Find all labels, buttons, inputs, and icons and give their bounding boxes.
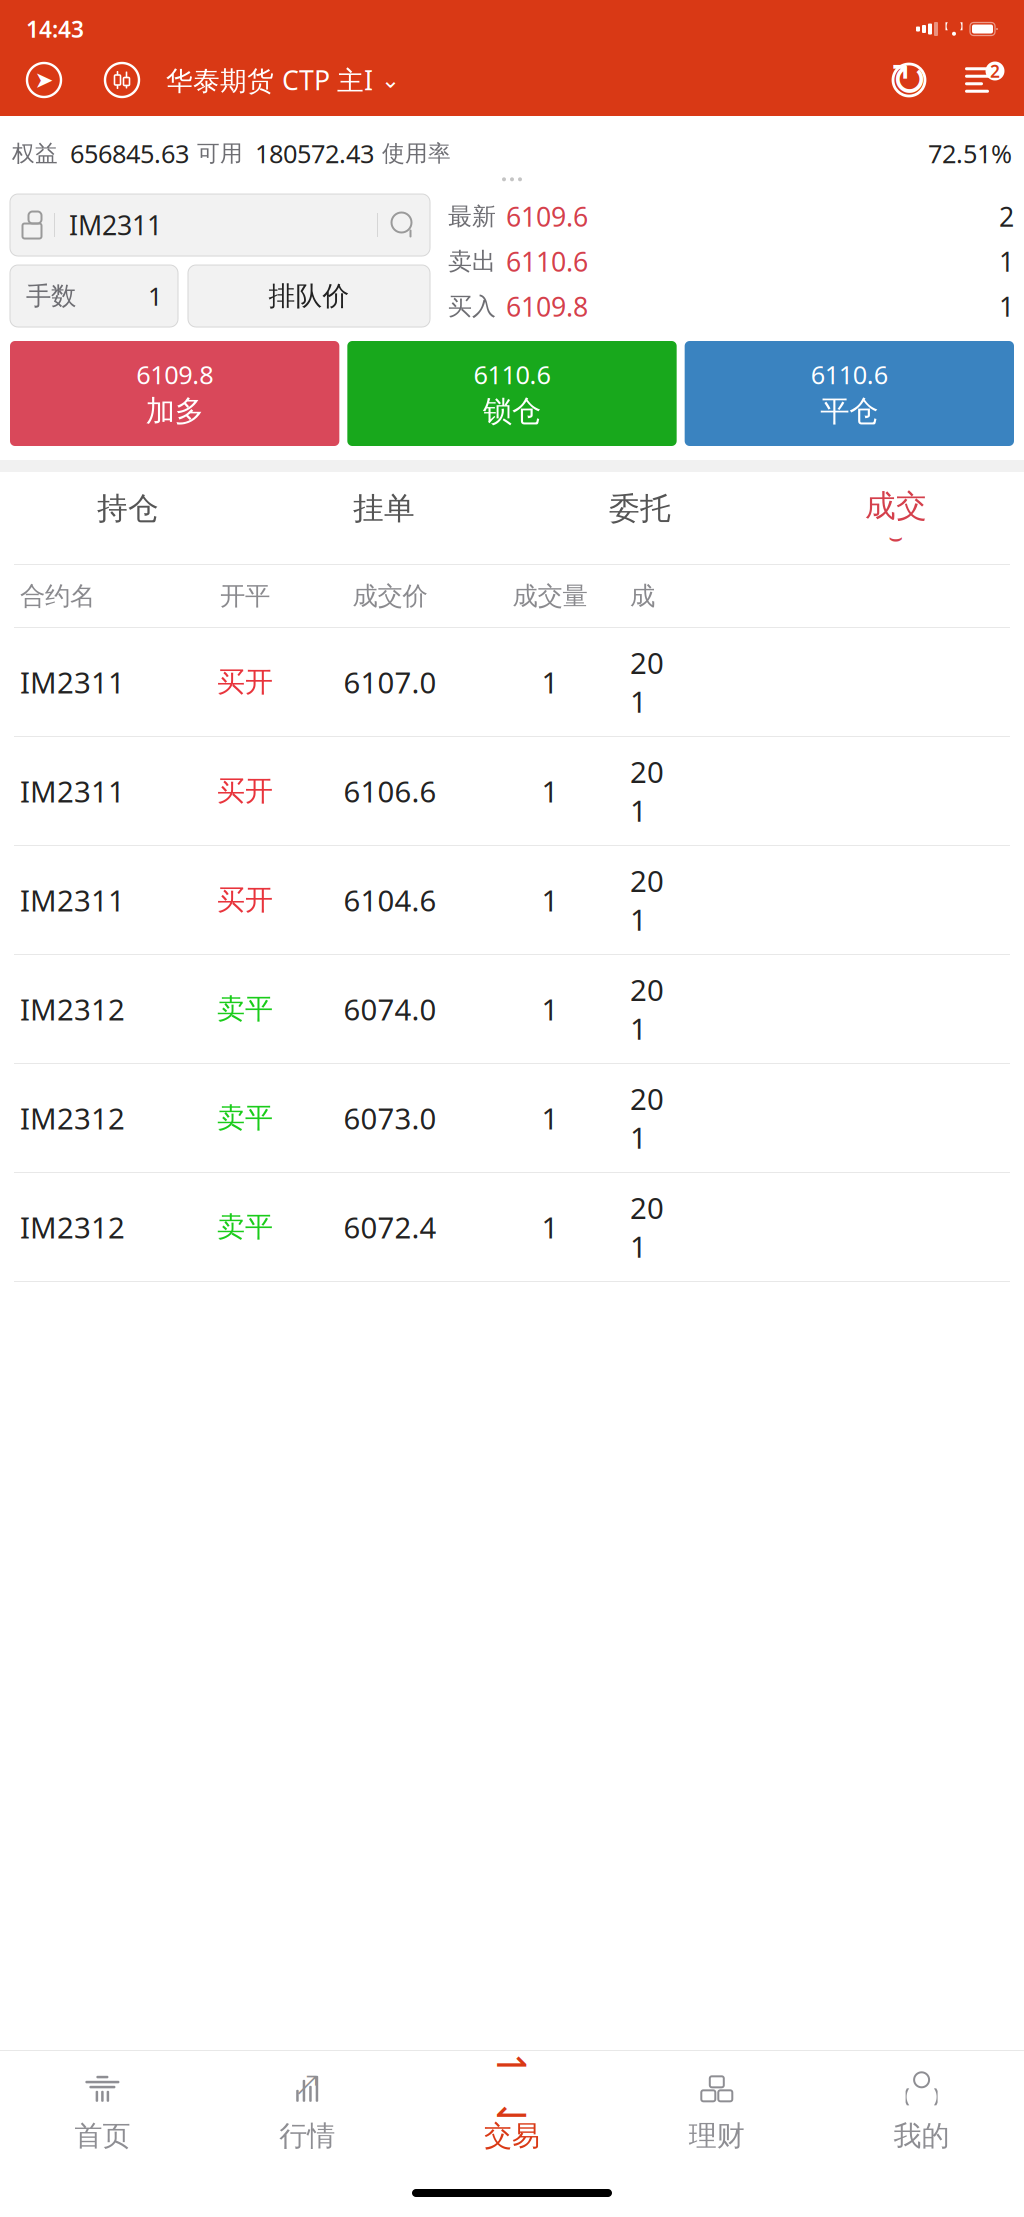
staticText: 1: [630, 1009, 647, 1048]
staticText: 买开: [217, 774, 273, 808]
staticText: 卖平: [217, 992, 273, 1026]
button[interactable]: IM2311: [0, 628, 1024, 737]
staticText: 理财: [689, 2119, 745, 2153]
staticText: 最新: [448, 202, 496, 231]
staticText: 20: [630, 1188, 664, 1227]
button[interactable]: ⇀: [410, 2051, 614, 2169]
staticText: 锁仓: [483, 393, 541, 429]
staticText: 20: [630, 643, 664, 682]
staticText: 1: [630, 1118, 647, 1157]
staticText: 1: [630, 1227, 647, 1266]
staticText: 1: [541, 1098, 558, 1137]
staticText: 20: [630, 970, 664, 1009]
button[interactable]: IM2311: [0, 737, 1024, 846]
button[interactable]: 排队价: [188, 265, 430, 327]
staticText: 6107.0: [343, 662, 436, 701]
staticText: 6110.6: [811, 358, 888, 391]
staticText: 加多: [146, 393, 204, 429]
staticText: 买开: [217, 665, 273, 699]
staticText: 持仓: [97, 490, 159, 527]
staticText: 6073.0: [343, 1098, 436, 1137]
button[interactable]: 我的: [819, 2051, 1024, 2169]
button[interactable]: 理财: [614, 2051, 819, 2169]
staticText: 开平: [220, 580, 270, 611]
staticText: 1: [999, 289, 1014, 324]
staticText: 1: [630, 682, 647, 721]
staticText: 20: [630, 752, 664, 791]
staticText: ↗: [293, 2064, 322, 2103]
button[interactable]: 6109.8: [10, 341, 339, 446]
staticText: 656845.63: [70, 137, 189, 170]
staticText: 成交: [865, 487, 927, 525]
staticText: IM2311: [20, 662, 125, 701]
staticText: 成交价: [352, 580, 427, 611]
button[interactable]: 首页: [0, 2051, 205, 2169]
staticText: 6106.6: [343, 771, 436, 810]
staticText: 1: [541, 989, 558, 1028]
staticText: 6110.6: [473, 358, 550, 391]
staticText: 使用率: [382, 140, 451, 167]
staticText: IM2311: [20, 771, 125, 810]
staticText: ⌣: [888, 527, 903, 549]
staticText: 2: [990, 59, 1000, 82]
staticText: 手数: [26, 280, 76, 311]
staticText: 可用: [197, 140, 243, 167]
staticText: 72.51%: [928, 137, 1012, 170]
staticText: 交易: [484, 2119, 540, 2153]
button[interactable]: IM2311: [0, 846, 1024, 955]
button[interactable]: 成交: [768, 472, 1024, 564]
button[interactable]: 挂单: [256, 472, 512, 564]
staticText: 卖平: [217, 1210, 273, 1244]
staticText: 我的: [894, 2119, 950, 2153]
staticText: 1: [541, 662, 558, 701]
staticText: 平仓: [820, 393, 878, 429]
button[interactable]: 委托: [512, 472, 768, 564]
staticText: 合约名: [20, 580, 95, 611]
button[interactable]: ↗: [205, 2051, 410, 2169]
staticText: IM2311: [69, 207, 162, 243]
staticText: 权益: [12, 140, 58, 167]
staticText: 6109.8: [136, 358, 213, 391]
button[interactable]: 华泰期货 CTP 主I: [166, 56, 400, 104]
staticText: 6109.6: [506, 199, 588, 234]
staticText: 1: [541, 771, 558, 810]
staticText: 挂单: [353, 490, 415, 527]
button[interactable]: 持仓: [0, 472, 256, 564]
button[interactable]: IM2312: [0, 1064, 1024, 1173]
staticText: 2: [999, 199, 1014, 234]
staticText: 华泰期货 CTP 主I: [166, 62, 373, 98]
staticText: 委托: [609, 490, 671, 527]
staticText: 1: [630, 900, 647, 939]
button[interactable]: IM2312: [0, 1173, 1024, 1282]
button[interactable]: IM2312: [0, 955, 1024, 1064]
staticText: 6074.0: [343, 989, 436, 1028]
button[interactable]: 手数: [10, 265, 178, 327]
staticText: IM2311: [20, 880, 125, 919]
staticText: 成: [630, 580, 655, 611]
staticText: ↻: [890, 54, 928, 106]
staticText: 6104.6: [343, 880, 436, 919]
staticText: 20: [630, 861, 664, 900]
staticText: IM2312: [20, 989, 125, 1028]
staticText: IM2312: [20, 1207, 125, 1246]
staticText: ➤: [34, 67, 53, 93]
staticText: 1: [630, 791, 647, 830]
button[interactable]: 菜单: [954, 57, 1006, 103]
staticText: 20: [630, 1079, 664, 1118]
button[interactable]: 行情图: [96, 54, 148, 106]
staticText: 1: [999, 244, 1014, 279]
button[interactable]: 6110.6: [685, 341, 1014, 446]
staticText: ↼: [495, 2091, 529, 2137]
button[interactable]: 刷新: [886, 57, 932, 103]
button[interactable]: 定位: [18, 54, 70, 106]
staticText: 6110.6: [506, 244, 588, 279]
staticText: 6072.4: [343, 1207, 436, 1246]
staticText: 行情: [279, 2119, 335, 2153]
button[interactable]: 6110.6: [347, 341, 677, 446]
staticText: ⇀: [495, 2041, 529, 2086]
staticText: IM2312: [20, 1098, 125, 1137]
staticText: 1: [541, 1207, 558, 1246]
button[interactable]: IM2311: [10, 194, 430, 256]
staticText: 买入: [448, 292, 496, 321]
staticText: 卖出: [448, 247, 496, 276]
